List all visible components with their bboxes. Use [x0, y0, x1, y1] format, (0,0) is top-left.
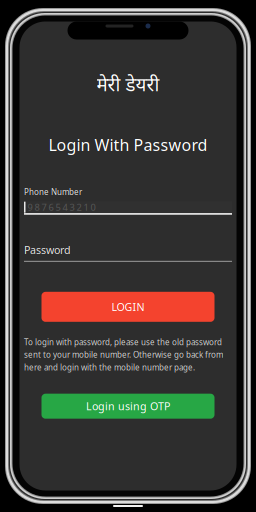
staticText: Login With Password — [48, 134, 207, 155]
staticText: 9 8 7 6 5 4 3 2 1 0 — [27, 201, 95, 213]
button[interactable]: Login using OTP — [41, 394, 214, 419]
staticText: To login with password, please use the o… — [24, 337, 223, 373]
staticText: Phone Number — [24, 186, 82, 197]
staticText: Login using OTP — [86, 399, 170, 413]
staticText: Password — [24, 243, 71, 257]
staticText: LOGIN — [111, 300, 144, 314]
staticText: मेरी डेयरी — [96, 71, 159, 96]
button[interactable]: LOGIN — [41, 292, 214, 322]
